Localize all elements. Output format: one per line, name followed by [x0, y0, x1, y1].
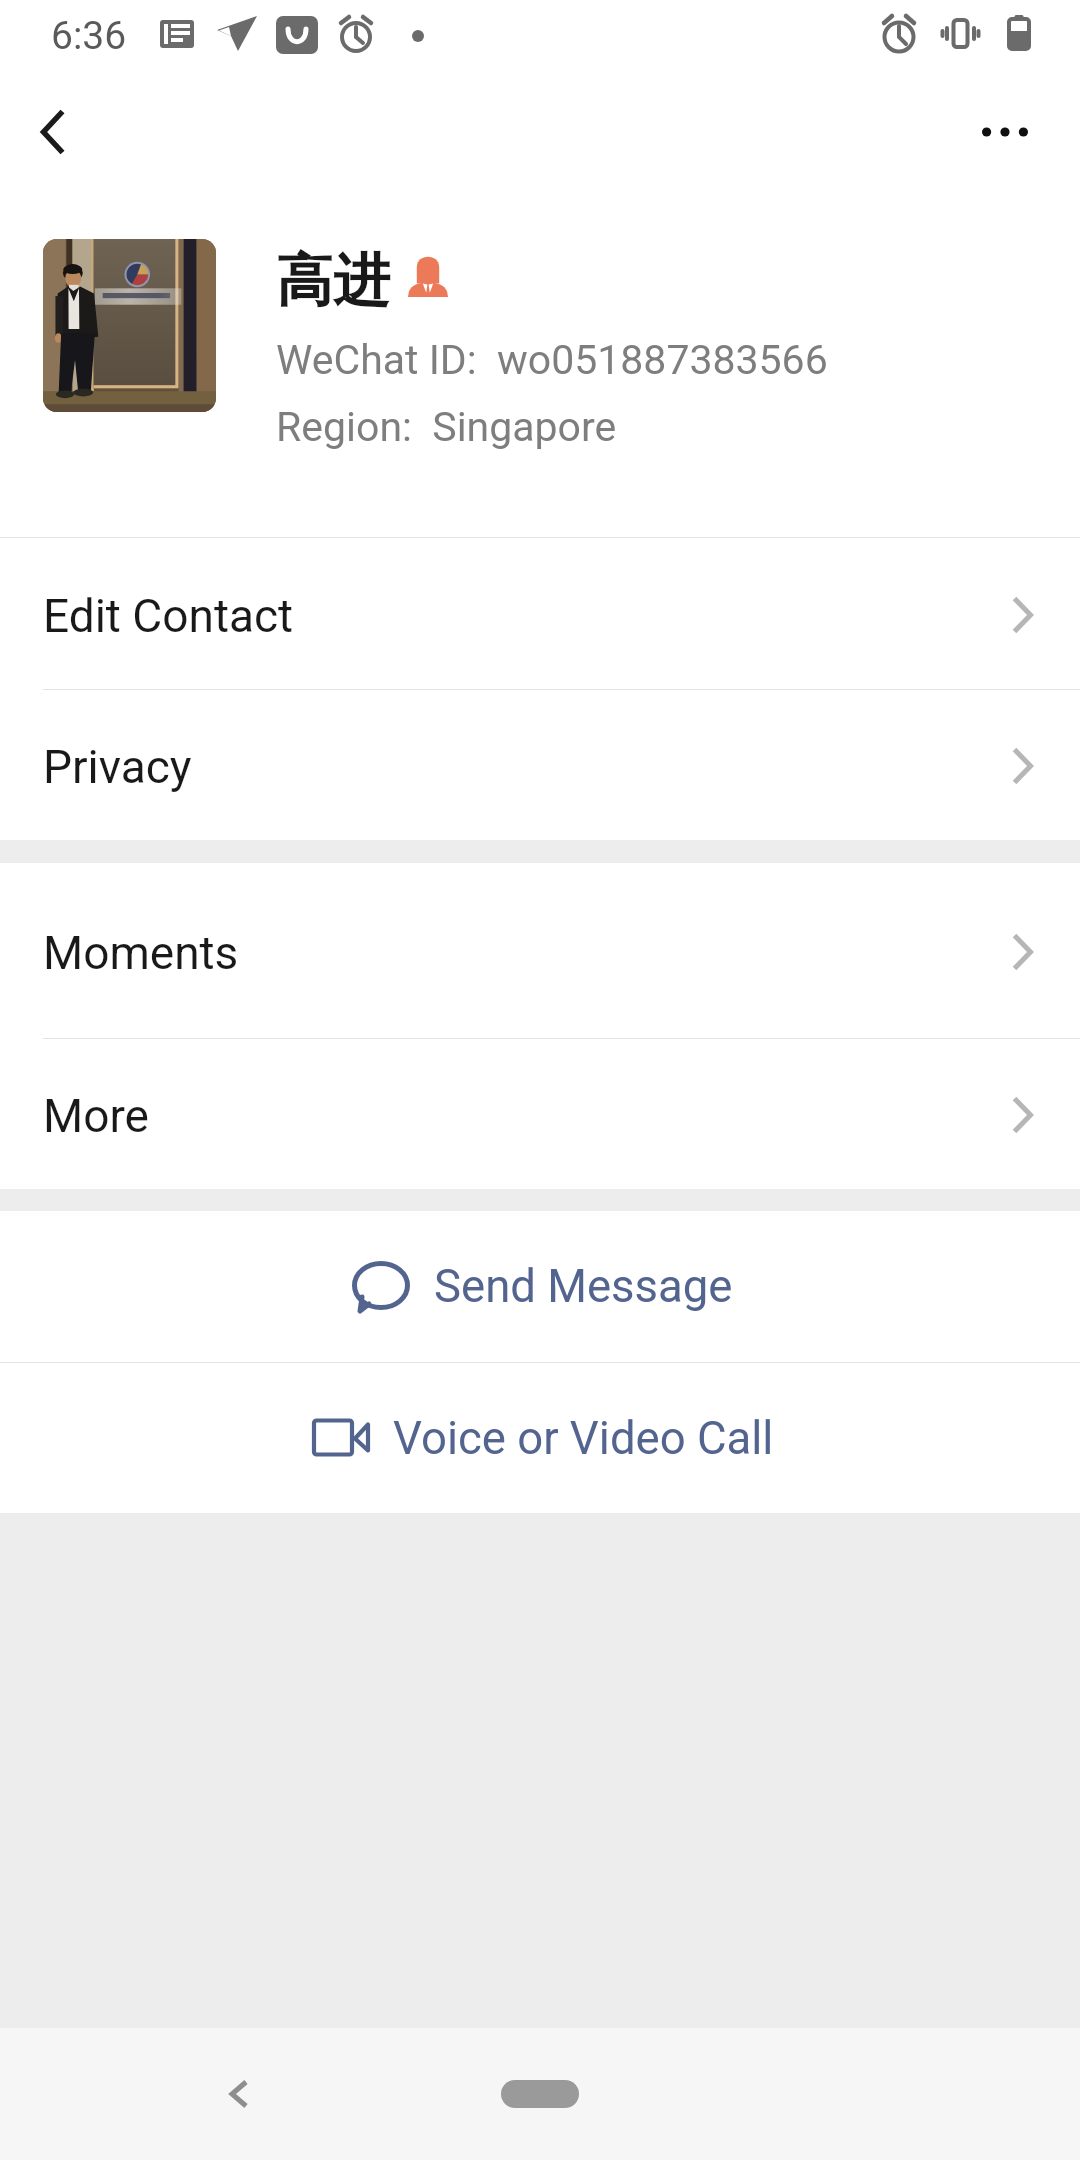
button[interactable]: Back [201, 2056, 277, 2132]
staticText: Region: Singapore [276, 403, 617, 451]
staticText: Edit Contact [43, 589, 294, 643]
staticText: More [43, 1089, 149, 1143]
staticText: Send Message [434, 1260, 733, 1313]
button[interactable]: Back [1, 78, 105, 186]
staticText: 6:36 [51, 13, 127, 59]
button[interactable]: Moments [0, 863, 1080, 1038]
button[interactable]: Voice or Video Call [0, 1363, 1080, 1513]
button[interactable]: Privacy [0, 690, 1080, 840]
button[interactable]: More options [955, 78, 1055, 186]
staticText: Privacy [43, 740, 192, 794]
staticText: 高进 [276, 245, 390, 317]
staticText: WeChat ID: wo051887383566 [276, 336, 828, 384]
button[interactable]: Home [501, 2080, 579, 2108]
staticText: Moments [43, 926, 239, 980]
button[interactable]: More [0, 1039, 1080, 1189]
button[interactable]: 高进 [0, 186, 1080, 537]
staticText: Voice or Video Call [393, 1412, 774, 1465]
button[interactable]: Edit Contact [0, 538, 1080, 689]
button[interactable]: Send Message [0, 1211, 1080, 1362]
